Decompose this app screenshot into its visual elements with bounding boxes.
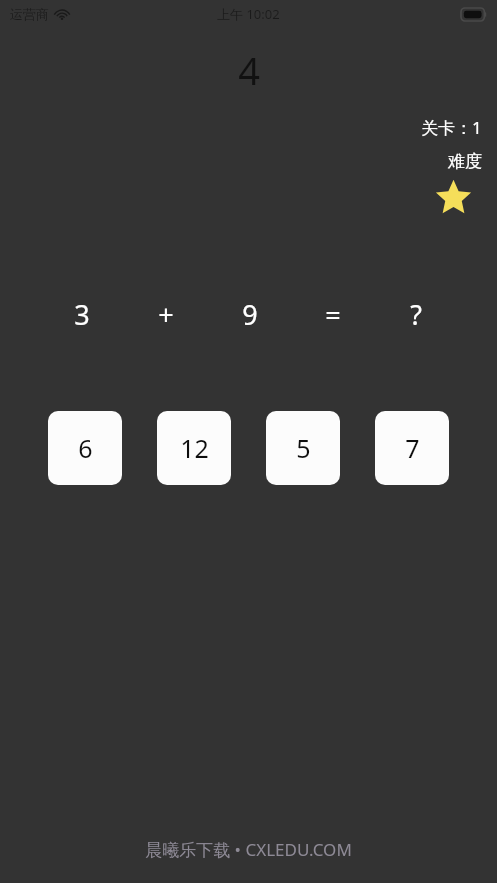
staticText: 3 [74,296,90,333]
staticText: 7 [405,431,420,465]
button[interactable]: 5 [266,411,340,485]
button[interactable]: 12 [157,411,231,485]
staticText: 上午 10:02 [217,5,280,23]
staticText: 晨曦乐下载 • CXLEDU.COM [145,838,352,861]
button[interactable]: 6 [48,411,122,485]
staticText: = [325,296,341,333]
staticText: 难度 [448,151,482,172]
staticText: + [158,296,174,333]
staticText: 4 [238,44,260,96]
staticText: 5 [296,431,311,465]
staticText: 12 [180,431,209,465]
staticText: ? [410,296,422,333]
staticText: 9 [242,296,258,333]
staticText: 关卡：1 [421,116,482,139]
staticText: 6 [78,431,93,465]
button[interactable]: 7 [375,411,449,485]
staticText: 运营商 [10,6,49,22]
